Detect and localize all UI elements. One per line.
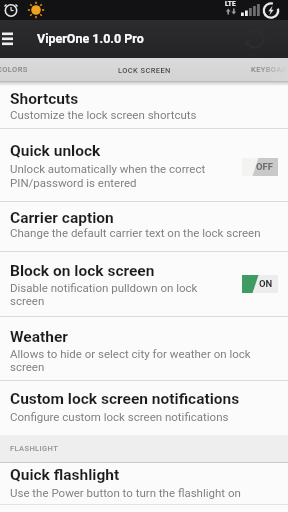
- button[interactable]: ON: [242, 275, 278, 293]
- staticText: Shortcuts: [10, 90, 79, 108]
- staticText: Allows to hide or select city for weathe…: [10, 347, 251, 360]
- button[interactable]: COLORS: [0, 65, 28, 74]
- button[interactable]: [0, 28, 24, 52]
- button[interactable]: LOCK SCREEN: [118, 66, 171, 75]
- staticText: ViperOne 1.0.0 Pro: [37, 31, 144, 46]
- staticText: OFF: [256, 161, 273, 172]
- staticText: Quick flashlight: [10, 466, 120, 484]
- button[interactable]: [0, 317, 288, 380]
- staticText: screen: [10, 294, 45, 307]
- button[interactable]: [0, 82, 288, 128]
- staticText: Change the default carrier text on the l…: [10, 226, 261, 239]
- staticText: Unlock automatically when the correct: [10, 162, 206, 175]
- button[interactable]: KEYBOARD: [251, 65, 288, 74]
- staticText: Block on lock screen: [10, 262, 155, 280]
- button[interactable]: [0, 129, 288, 201]
- staticText: Weather: [10, 328, 68, 346]
- staticText: Quick unlock: [10, 142, 101, 160]
- staticText: screen: [10, 360, 45, 373]
- button[interactable]: [0, 202, 288, 251]
- staticText: Disable notification pulldown on lock: [10, 281, 198, 294]
- staticText: LTE: [225, 0, 236, 8]
- staticText: ON: [259, 278, 273, 289]
- staticText: Carrier caption: [10, 209, 114, 227]
- button[interactable]: [0, 381, 288, 435]
- button[interactable]: [0, 463, 288, 504]
- staticText: Use the Power button to turn the flashli…: [10, 486, 241, 499]
- button[interactable]: OFF: [242, 158, 278, 176]
- staticText: Custom lock screen notifications: [10, 390, 240, 408]
- staticText: Configure custom lock screen notificatio…: [10, 410, 229, 423]
- staticText: Customize the lock screen shortcuts: [10, 108, 197, 121]
- button[interactable]: [0, 252, 288, 316]
- staticText: FLASHLIGHT: [10, 444, 59, 453]
- staticText: PIN/password is entered: [10, 176, 137, 189]
